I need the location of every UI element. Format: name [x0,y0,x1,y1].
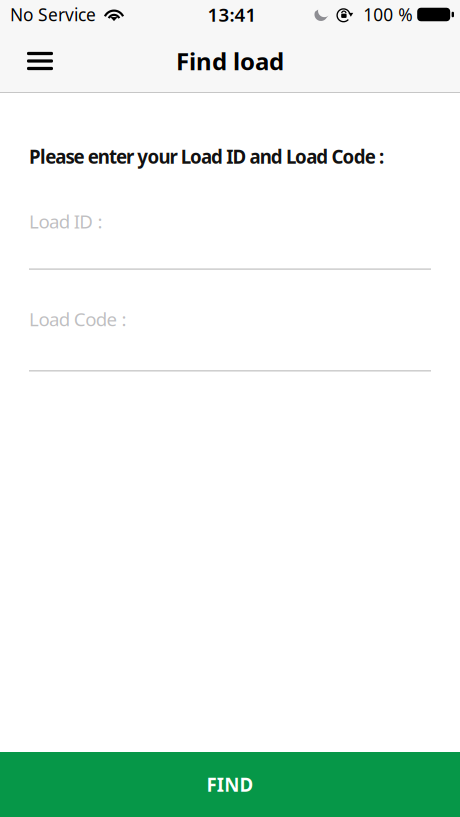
staticText: No Service [10,3,96,26]
staticText: FIND [206,772,254,797]
staticText: Load ID : [29,209,102,234]
button[interactable]: Load Code : [29,307,431,371]
staticText: Find load [176,45,284,77]
staticText: Please enter your Load ID and Load Code … [29,144,384,169]
button[interactable]: Menu [18,38,62,84]
staticText: Load Code : [29,307,126,331]
button[interactable]: FIND [0,752,460,817]
staticText: 100 % [363,3,412,26]
button[interactable]: Load ID : [29,209,431,270]
staticText: 13:41 [207,2,256,27]
